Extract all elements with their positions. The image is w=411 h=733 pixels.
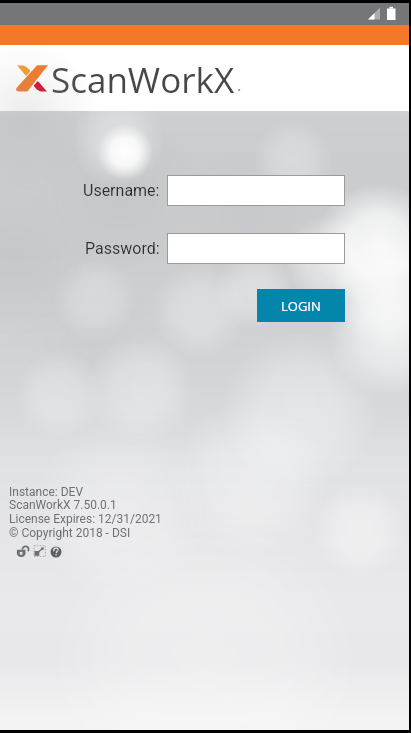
button[interactable] <box>167 175 345 206</box>
staticText: . <box>237 73 242 96</box>
staticText: Instance: DEV <box>9 485 84 499</box>
staticText: LOGIN <box>281 297 321 315</box>
button[interactable] <box>167 233 345 264</box>
button[interactable]: Scanner settings <box>33 543 47 558</box>
staticText: ScanWorkX <box>51 56 235 104</box>
staticText: Password: <box>85 239 160 258</box>
button[interactable]: LOGIN <box>257 289 345 322</box>
button[interactable]: Unlock <box>14 543 30 558</box>
staticText: ScanWorkX 7.50.0.1 <box>9 498 117 512</box>
button[interactable]: Help <box>50 543 63 558</box>
staticText: Username: <box>83 181 160 200</box>
staticText: License Expires: 12/31/2021 <box>9 512 162 526</box>
staticText: © Copyright 2018 - DSI <box>9 526 131 540</box>
